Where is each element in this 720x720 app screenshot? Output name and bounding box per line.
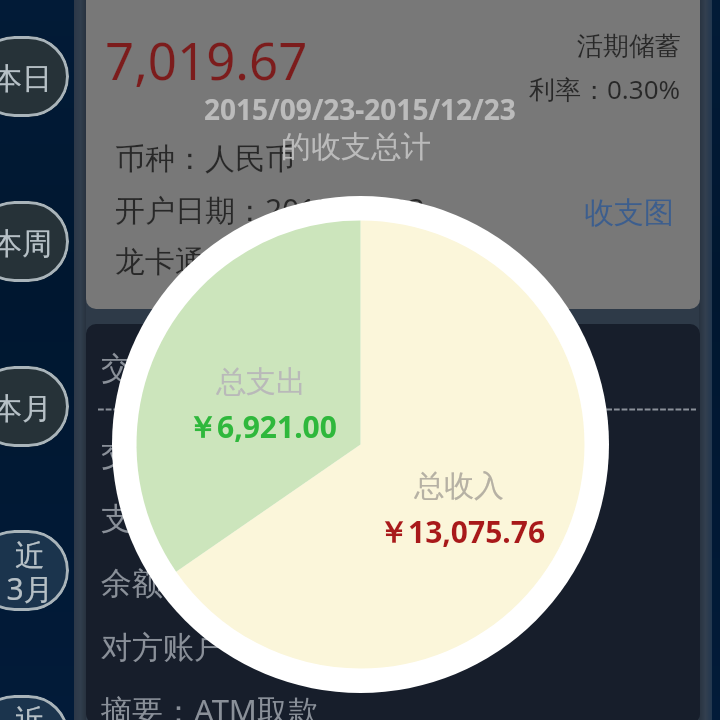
staticText: 利率：0.30% (529, 71, 681, 107)
staticText: 7,019.67 (105, 25, 308, 94)
staticText: 近 3月 (6, 537, 54, 609)
button[interactable]: 本月 (0, 366, 69, 447)
staticText: 摘要：ATM取款 (101, 689, 319, 720)
staticText: 本日 (0, 60, 52, 98)
staticText: 的收支总计 (281, 128, 431, 166)
button[interactable]: 本日 (0, 36, 69, 117)
staticText: 近 6月 (6, 702, 54, 720)
staticText: 币种：人民币 (115, 140, 295, 178)
button[interactable]: 近 3月 (0, 530, 69, 611)
staticText: ￥13,075.76 (378, 511, 546, 552)
staticText: 收支图 (584, 194, 674, 232)
staticText: 活期储蓄 (577, 30, 681, 63)
staticText: 本月 (0, 390, 52, 428)
button[interactable]: 收支图 (584, 194, 674, 232)
staticText: 本周 (0, 225, 52, 263)
staticText: 龙卡通 (115, 243, 205, 281)
staticText: 余额：7,019.67 (101, 561, 318, 603)
staticText: 支出 (101, 499, 163, 538)
staticText: 开户日期：2015/01/23 (115, 189, 425, 230)
staticText: 交易金额：-500.00 (101, 432, 363, 474)
button[interactable]: 本周 (0, 201, 69, 282)
staticText: 对方账户： (101, 628, 256, 667)
staticText: 交易日期：2015/12/23 (101, 346, 421, 388)
staticText: ￥6,921.00 (187, 406, 337, 447)
button[interactable]: 近 6月 (0, 695, 69, 720)
staticText: 2015/09/23-2015/12/23 (204, 90, 516, 128)
staticText: 总支出 (216, 363, 306, 401)
staticText: 总收入 (414, 467, 504, 505)
